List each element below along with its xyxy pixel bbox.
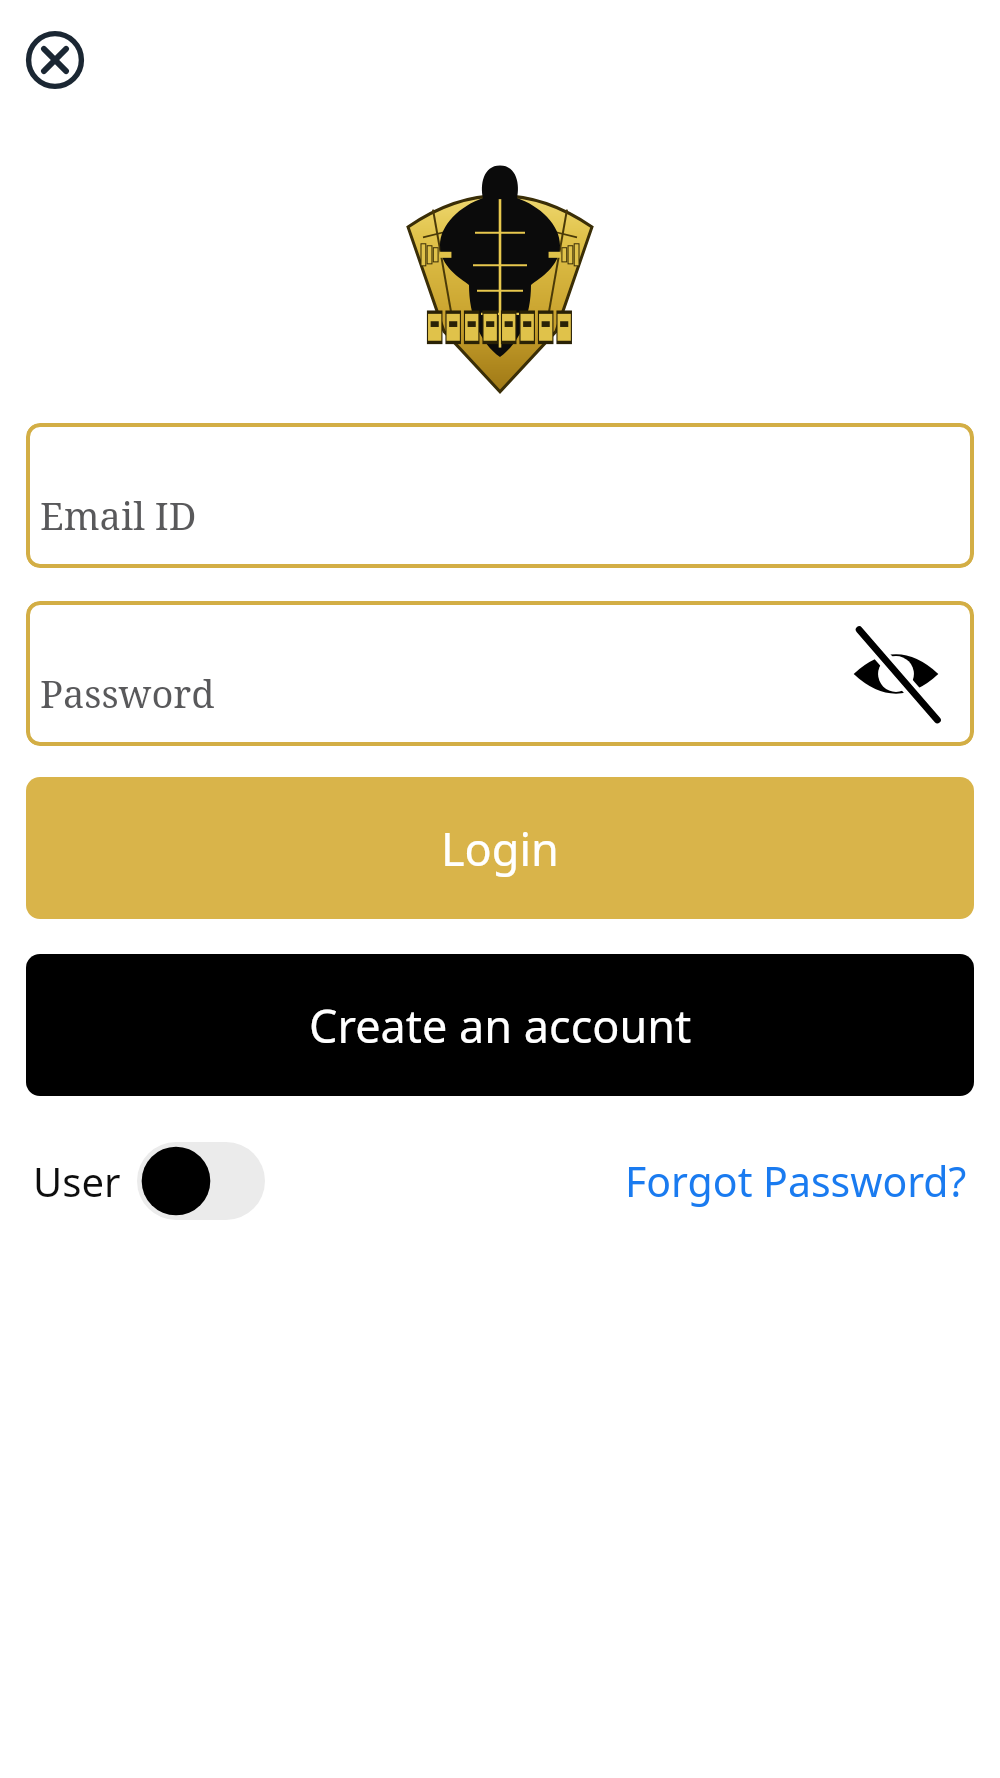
button[interactable]: Email ID: [26, 423, 974, 568]
staticText: User: [33, 1154, 121, 1208]
button[interactable]: Forgot Password?: [625, 1153, 967, 1209]
button[interactable]: Create an account: [26, 954, 974, 1096]
staticText: Create an account: [309, 995, 692, 1056]
staticText: Password: [40, 667, 215, 719]
button[interactable]: Login: [26, 777, 974, 919]
button[interactable]: Close: [17, 22, 93, 98]
staticText: Forgot Password?: [625, 1153, 967, 1209]
staticText: Login: [441, 818, 559, 879]
button[interactable]: Toggle password visibility: [848, 626, 944, 722]
button[interactable]: Password: [26, 601, 974, 746]
staticText: Email ID: [40, 489, 197, 541]
button[interactable]: User: [33, 1142, 265, 1220]
